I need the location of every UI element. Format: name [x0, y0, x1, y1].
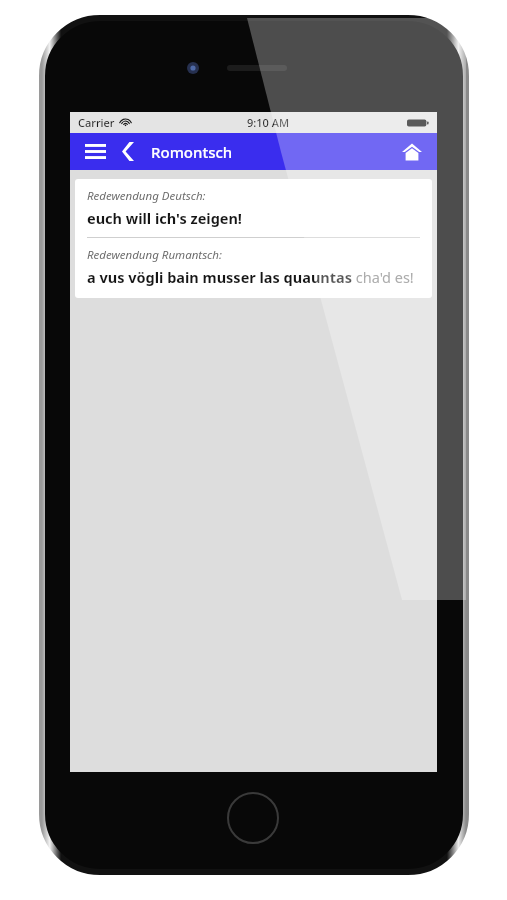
staticText: Redewendung Deutsch:	[87, 188, 206, 204]
button[interactable]: Menu	[79, 135, 111, 168]
staticText: Redewendung Rumantsch:	[87, 247, 222, 263]
staticText: a vus vögli bain musser las quauntas cha…	[87, 267, 414, 287]
button[interactable]: Redewendung Deutsch:	[75, 179, 432, 298]
staticText: Romontsch	[151, 142, 233, 162]
staticText: Carrier	[78, 115, 115, 130]
button[interactable]: Home	[393, 133, 431, 170]
button[interactable]: Back	[114, 135, 142, 168]
staticText: 9:10 AM	[247, 115, 290, 130]
staticText: euch will ich's zeigen!	[87, 208, 242, 228]
